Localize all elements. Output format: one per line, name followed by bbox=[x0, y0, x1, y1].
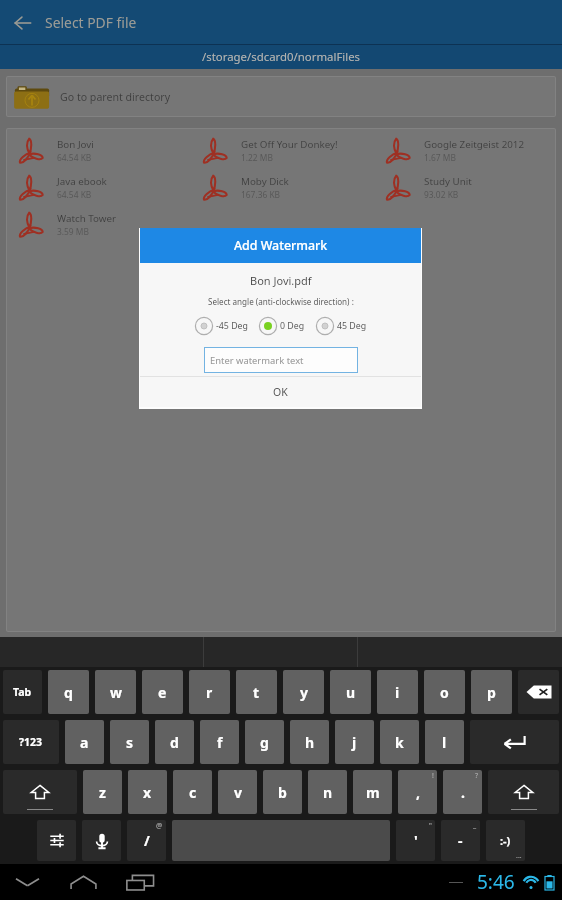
staticText: b bbox=[278, 783, 287, 802]
staticText: s bbox=[126, 733, 134, 752]
staticText: i bbox=[395, 683, 400, 702]
button[interactable]: Java ebook bbox=[6, 169, 190, 206]
button[interactable]: / bbox=[127, 820, 166, 861]
button[interactable]: - bbox=[441, 820, 480, 861]
button[interactable]: b bbox=[263, 770, 302, 814]
button[interactable]: Enter bbox=[470, 720, 559, 764]
button[interactable]: Home bbox=[65, 864, 101, 900]
button[interactable]: Backspace bbox=[518, 670, 559, 714]
staticText: -45 Deg bbox=[216, 320, 248, 332]
staticText: m bbox=[366, 783, 380, 802]
button[interactable]: c bbox=[173, 770, 212, 814]
staticText: w bbox=[110, 683, 122, 702]
staticText: a bbox=[80, 733, 89, 752]
button[interactable]: u bbox=[330, 670, 371, 714]
staticText: Bon Jovi bbox=[57, 138, 94, 151]
button[interactable]: Go to parent directory bbox=[6, 76, 556, 117]
button[interactable]: a bbox=[65, 720, 104, 764]
button[interactable]: k bbox=[380, 720, 419, 764]
button[interactable]: Back bbox=[9, 864, 45, 900]
button[interactable]: Watch Tower bbox=[6, 206, 190, 243]
button[interactable]: Get Off Your Donkey! bbox=[190, 132, 373, 169]
staticText: j bbox=[352, 733, 357, 752]
staticText: , bbox=[416, 783, 420, 802]
staticText: OK bbox=[273, 385, 288, 399]
button[interactable]: n bbox=[308, 770, 347, 814]
button[interactable]: t bbox=[236, 670, 277, 714]
staticText: n bbox=[323, 783, 333, 802]
button[interactable]: Shift bbox=[3, 770, 77, 814]
staticText: Moby Dick bbox=[241, 175, 289, 188]
button[interactable]: :-) bbox=[486, 820, 525, 861]
button[interactable]: ' bbox=[396, 820, 435, 861]
staticText: Add Watermark bbox=[234, 237, 328, 254]
button[interactable]: . bbox=[443, 770, 482, 814]
staticText: 93.02 KB bbox=[424, 189, 459, 200]
button[interactable]: Moby Dick bbox=[190, 169, 373, 206]
button[interactable]: l bbox=[425, 720, 464, 764]
button[interactable]: v bbox=[218, 770, 257, 814]
staticText: k bbox=[395, 733, 404, 752]
staticText: /storage/sdcard0/normalFiles bbox=[202, 49, 361, 65]
staticText: / bbox=[144, 831, 150, 850]
button[interactable]: q bbox=[48, 670, 89, 714]
button[interactable]: d bbox=[155, 720, 194, 764]
button[interactable]: g bbox=[245, 720, 284, 764]
button[interactable]: x bbox=[128, 770, 167, 814]
staticText: o bbox=[440, 683, 449, 702]
button[interactable]: OK bbox=[140, 377, 421, 407]
staticText: 3.59 MB bbox=[57, 226, 89, 237]
staticText: h bbox=[305, 733, 315, 752]
button[interactable]: Back bbox=[0, 0, 45, 45]
button[interactable]: j bbox=[335, 720, 374, 764]
button[interactable]: o bbox=[424, 670, 465, 714]
button[interactable]: Study Unit bbox=[373, 169, 556, 206]
staticText: @ bbox=[156, 821, 163, 831]
button[interactable]: s bbox=[110, 720, 149, 764]
button[interactable]: p bbox=[471, 670, 512, 714]
staticText: Go to parent directory bbox=[60, 90, 171, 104]
button[interactable]: Shift bbox=[488, 770, 559, 814]
button[interactable]: Voice input bbox=[82, 820, 121, 861]
button[interactable]: f bbox=[200, 720, 239, 764]
staticText: Watch Tower bbox=[57, 212, 117, 225]
button[interactable]: Recent apps bbox=[122, 864, 158, 900]
button[interactable]: Add Watermark bbox=[140, 228, 421, 263]
button[interactable]: m bbox=[353, 770, 392, 814]
button[interactable]: , bbox=[398, 770, 437, 814]
button[interactable]: r bbox=[189, 670, 230, 714]
staticText: Google Zeitgeist 2012 bbox=[424, 138, 525, 151]
staticText: p bbox=[487, 683, 496, 702]
button[interactable]: 0 Deg bbox=[258, 316, 305, 336]
staticText: z bbox=[99, 783, 106, 802]
staticText: Java ebook bbox=[57, 175, 107, 188]
button[interactable]: Google Zeitgeist 2012 bbox=[373, 132, 556, 169]
button[interactable]: i bbox=[377, 670, 418, 714]
button[interactable]: Enter watermark text bbox=[204, 347, 358, 373]
staticText: y bbox=[300, 683, 308, 702]
staticText: ... bbox=[516, 851, 522, 861]
button[interactable]: 45 Deg bbox=[315, 316, 367, 336]
staticText: f bbox=[217, 733, 223, 752]
button[interactable]: y bbox=[283, 670, 324, 714]
staticText: 45 Deg bbox=[337, 320, 367, 332]
button[interactable]: Keyboard settings bbox=[37, 820, 76, 861]
staticText: 0 Deg bbox=[280, 320, 305, 332]
button[interactable]: -45 Deg bbox=[194, 316, 248, 336]
button[interactable]: ?123 bbox=[3, 720, 59, 764]
button[interactable]: w bbox=[95, 670, 136, 714]
staticText: c bbox=[189, 783, 197, 802]
staticText: _ bbox=[473, 821, 477, 831]
staticText: . bbox=[461, 783, 465, 802]
button[interactable]: h bbox=[290, 720, 329, 764]
staticText: Select PDF file bbox=[45, 13, 137, 32]
button[interactable]: z bbox=[83, 770, 122, 814]
staticText: ! bbox=[432, 771, 434, 781]
button[interactable]: Bon Jovi bbox=[6, 132, 190, 169]
button[interactable]: Tab bbox=[3, 670, 42, 714]
button[interactable]: e bbox=[142, 670, 183, 714]
staticText: q bbox=[64, 683, 73, 702]
staticText: ?123 bbox=[19, 735, 43, 749]
staticText: e bbox=[158, 683, 167, 702]
